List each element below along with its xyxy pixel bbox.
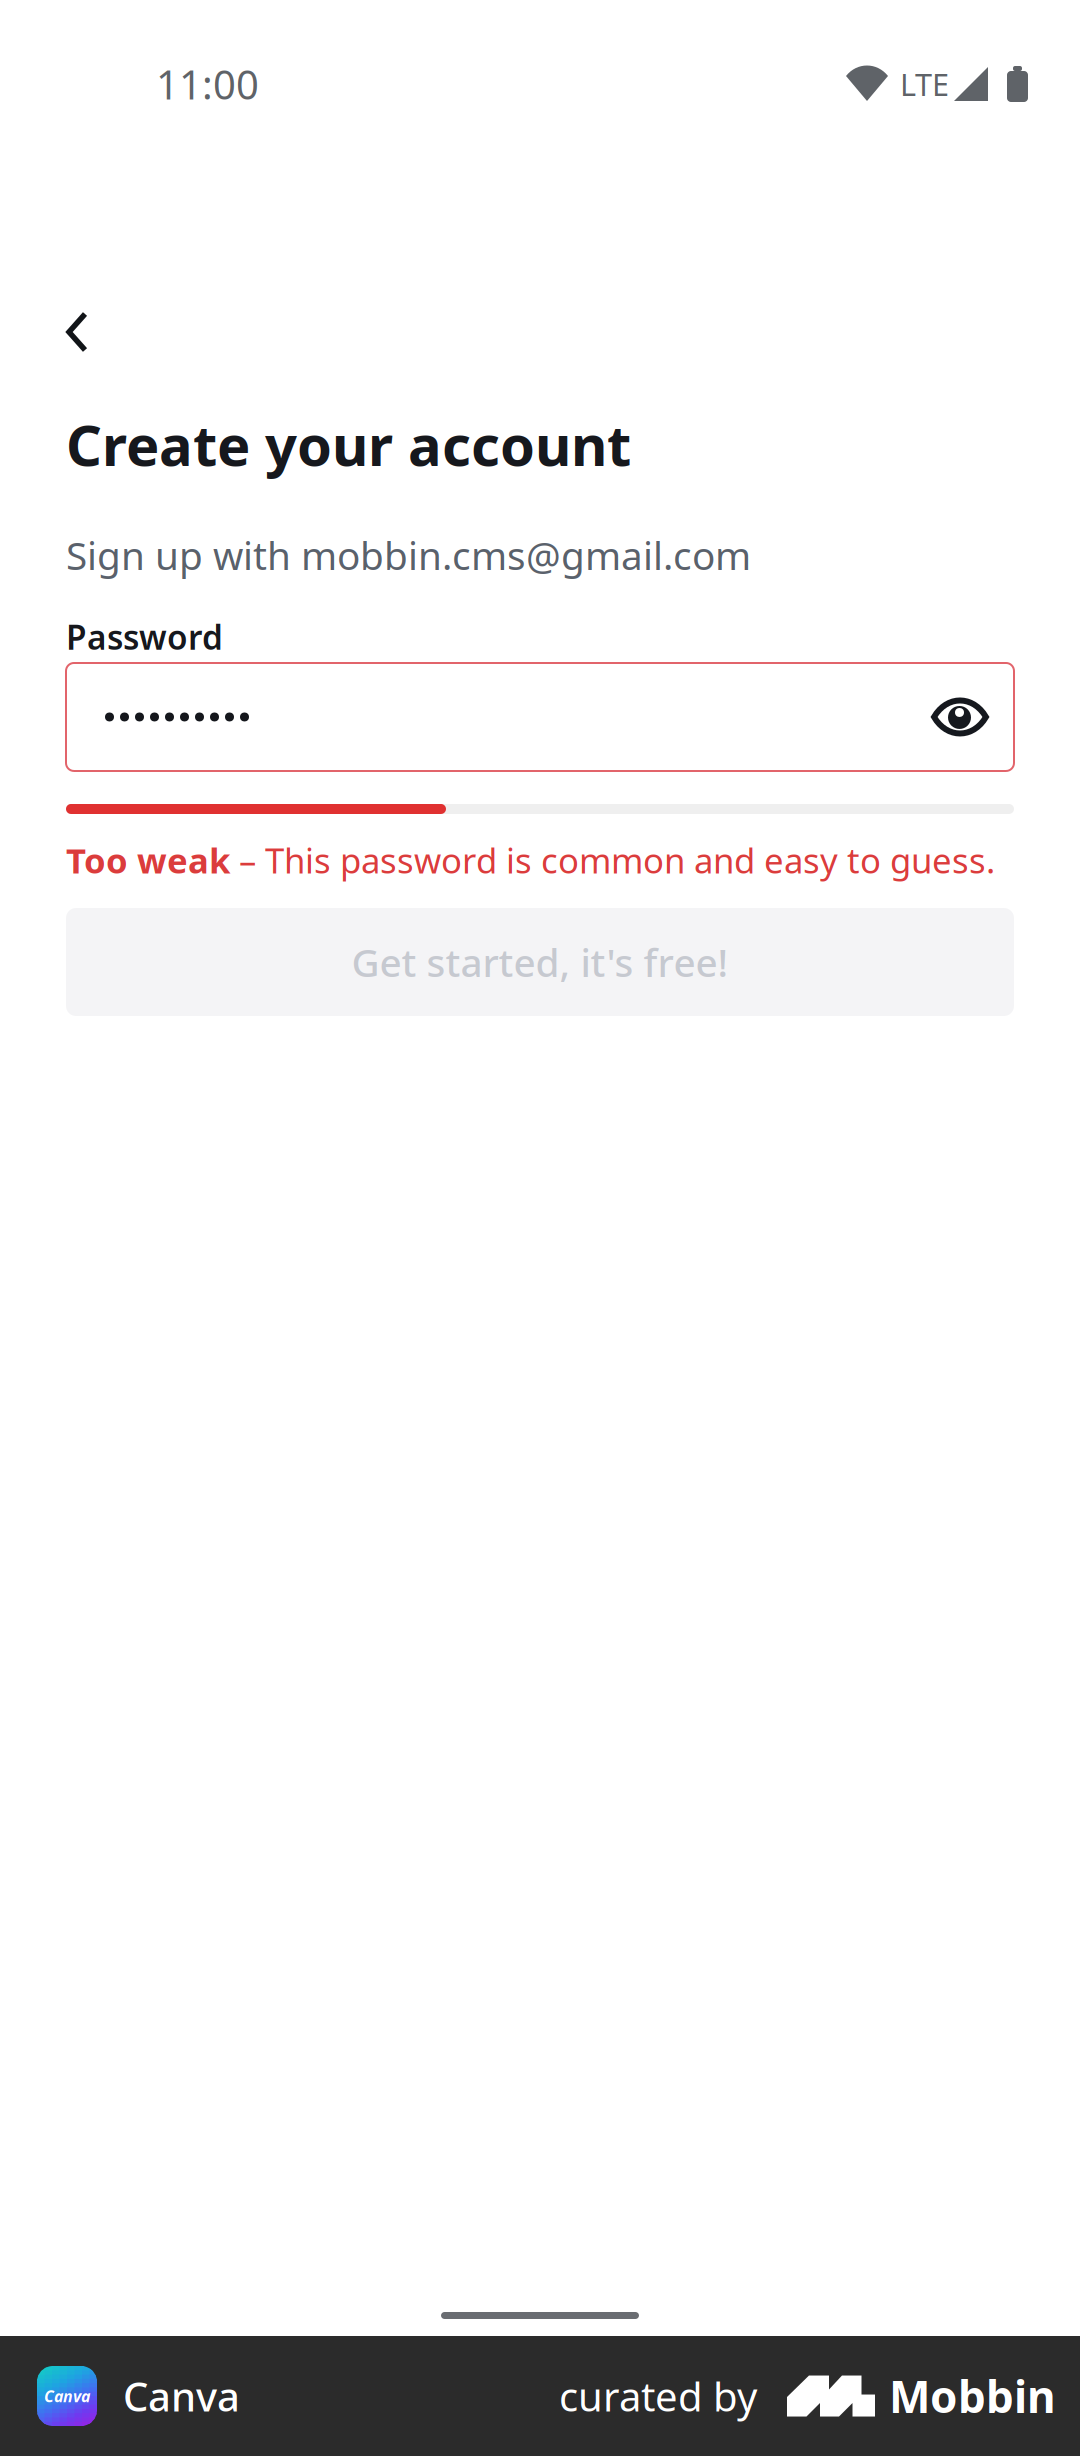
staticText: Canva xyxy=(123,2369,240,2422)
button[interactable]: Back xyxy=(66,311,118,353)
staticText: 11:00 xyxy=(156,57,259,110)
staticText: curated by xyxy=(559,2369,757,2422)
button[interactable]: Show password xyxy=(931,698,989,736)
button[interactable]: Get started, it's free! xyxy=(66,908,1014,1016)
staticText: Canva xyxy=(44,2385,90,2407)
staticText: Get started, it's free! xyxy=(351,936,728,988)
staticText: Mobbin xyxy=(889,2367,1056,2425)
staticText: Sign up with mobbin.cms@gmail.com xyxy=(66,529,751,581)
staticText: Create your account xyxy=(66,407,631,481)
staticText: Password xyxy=(66,615,223,659)
button[interactable]: Password xyxy=(66,663,1014,771)
staticText: LTE xyxy=(900,64,949,104)
staticText: Too weak – This password is common and e… xyxy=(66,837,995,883)
